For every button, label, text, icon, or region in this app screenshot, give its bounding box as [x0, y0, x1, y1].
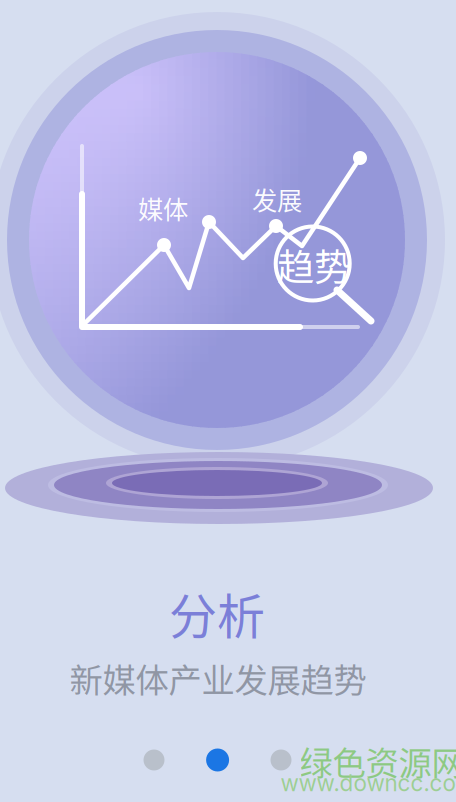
staticText: 分析 [169, 578, 265, 648]
button[interactable]: Page 3 [269, 748, 292, 771]
staticText: 发展 [252, 181, 302, 217]
staticText: 趋势 [277, 238, 351, 292]
button[interactable]: Page 2 [206, 748, 229, 771]
staticText: 媒体 [138, 190, 188, 226]
staticText: 新媒体产业发展趋势 [69, 654, 366, 702]
staticText: www.downcc.com [280, 769, 456, 797]
staticText: 绿色资源网 [299, 737, 456, 785]
button[interactable]: Page 1 [142, 748, 165, 771]
